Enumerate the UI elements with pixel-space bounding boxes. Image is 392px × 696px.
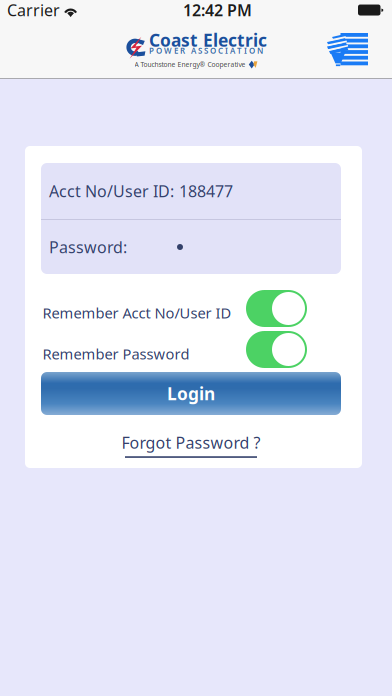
staticText: Login bbox=[167, 382, 215, 405]
staticText: Password: bbox=[49, 236, 127, 258]
button[interactable]: Remember Password bbox=[41, 331, 307, 372]
staticText: Acct No/User ID: bbox=[49, 180, 174, 202]
staticText: Remember Acct No/User ID bbox=[42, 303, 231, 322]
staticText: 12:42 PM bbox=[183, 0, 252, 21]
button[interactable]: Menu bbox=[326, 31, 392, 67]
staticText: Remember Password bbox=[42, 344, 189, 363]
staticText: P O W E R A S S O C I A T I O N bbox=[149, 45, 263, 56]
staticText: A Touchstone Energy® Cooperative bbox=[134, 60, 245, 69]
staticText: 188477 bbox=[179, 180, 233, 202]
staticText: Forgot Password ? bbox=[121, 432, 260, 453]
staticText: Coast Electric bbox=[149, 29, 267, 52]
button[interactable]: Remember Acct No/User ID bbox=[41, 290, 307, 331]
staticText: Carrier bbox=[7, 0, 60, 21]
button[interactable]: Forgot Password ? bbox=[41, 432, 341, 458]
button[interactable]: Login bbox=[41, 372, 341, 415]
